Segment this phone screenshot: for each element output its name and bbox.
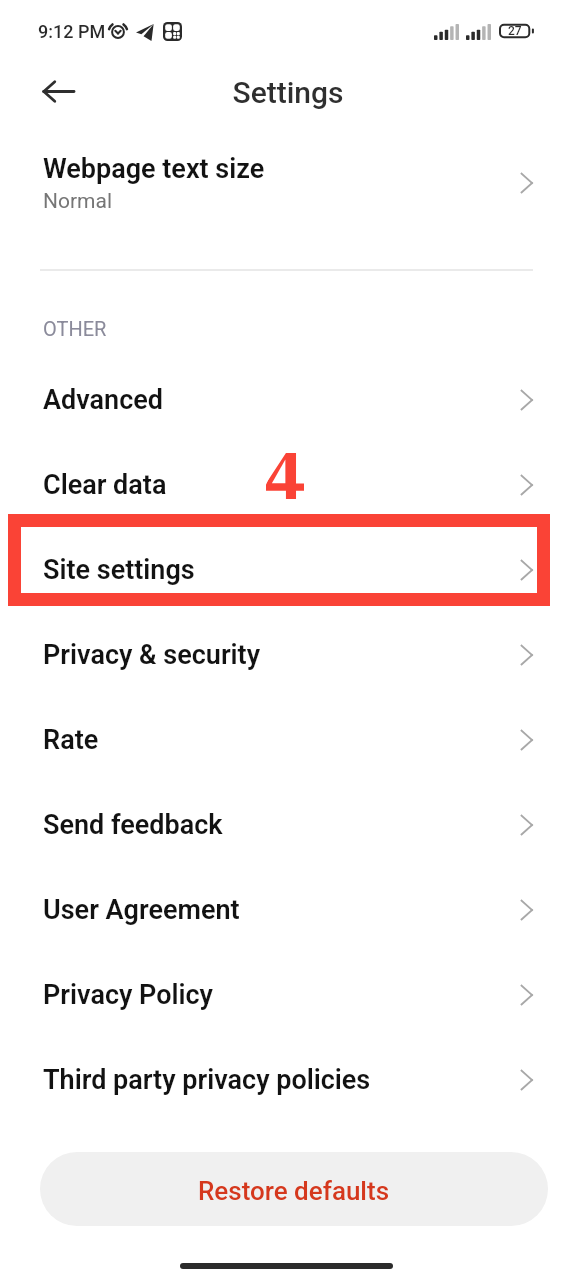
staticText: Privacy & security bbox=[43, 639, 261, 671]
button[interactable]: Clear data bbox=[0, 442, 576, 527]
staticText: Privacy Policy bbox=[43, 979, 214, 1011]
staticText: Webpage text size bbox=[43, 153, 265, 185]
staticText: Rate bbox=[43, 724, 99, 756]
button[interactable]: Privacy & security bbox=[0, 612, 576, 697]
button[interactable]: Third party privacy policies bbox=[0, 1037, 576, 1122]
button[interactable]: Restore defaults bbox=[40, 1152, 548, 1226]
staticText: Normal bbox=[43, 189, 113, 214]
button[interactable]: Advanced bbox=[0, 357, 576, 442]
staticText: OTHER bbox=[43, 317, 107, 340]
button[interactable]: User Agreement bbox=[0, 867, 576, 952]
staticText: 27 bbox=[508, 24, 522, 38]
staticText: Clear data bbox=[43, 469, 167, 501]
staticText: Restore defaults bbox=[198, 1176, 390, 1206]
staticText: Settings bbox=[0, 75, 576, 110]
staticText: 9:12 PM bbox=[38, 21, 106, 42]
button[interactable]: Site settings bbox=[0, 527, 576, 612]
staticText: Third party privacy policies bbox=[43, 1064, 371, 1096]
staticText: Send feedback bbox=[43, 809, 223, 841]
staticText: User Agreement bbox=[43, 894, 240, 926]
button[interactable]: Webpage text size bbox=[0, 140, 576, 225]
button[interactable]: Rate bbox=[0, 697, 576, 782]
staticText: Advanced bbox=[43, 384, 163, 416]
button[interactable]: Back bbox=[28, 61, 88, 121]
button[interactable]: Privacy Policy bbox=[0, 952, 576, 1037]
button[interactable]: Send feedback bbox=[0, 782, 576, 867]
staticText: Site settings bbox=[43, 554, 195, 586]
